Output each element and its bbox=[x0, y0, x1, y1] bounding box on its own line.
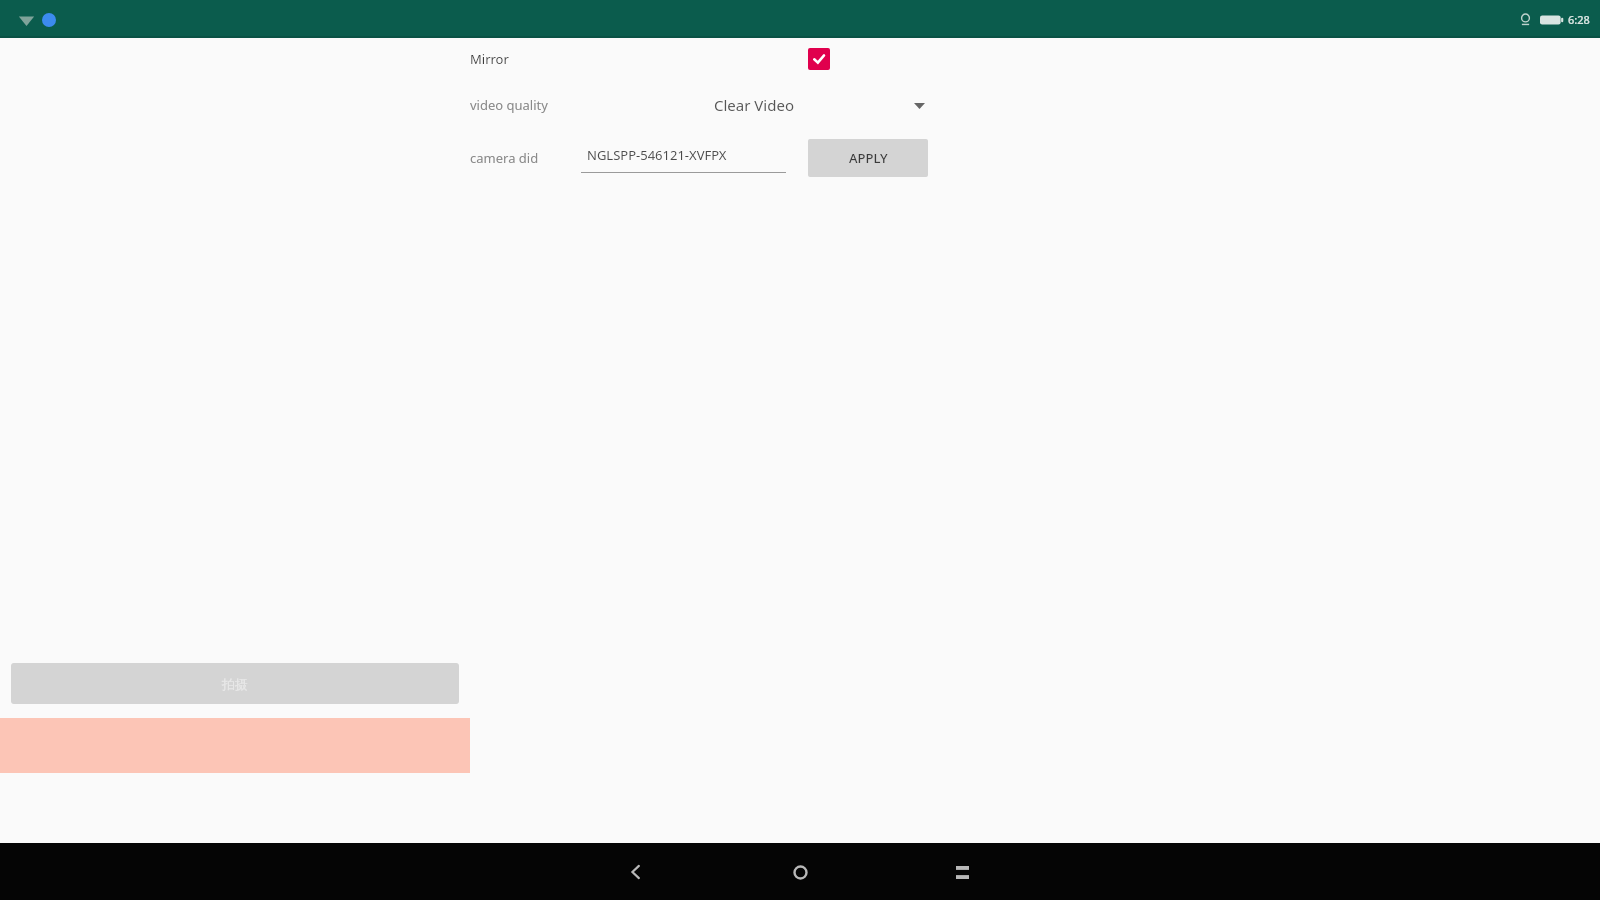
button[interactable]: Recent apps bbox=[934, 844, 990, 900]
staticText: Mirror bbox=[470, 50, 509, 68]
staticText: NGLSPP-546121-XVFPX bbox=[587, 146, 727, 164]
staticText: camera did bbox=[470, 149, 539, 167]
staticText: APPLY bbox=[849, 149, 888, 167]
button[interactable]: Home bbox=[772, 844, 828, 900]
staticText: Clear Video bbox=[714, 95, 794, 115]
button[interactable]: NGLSPP-546121-XVFPX bbox=[581, 143, 786, 173]
button[interactable]: Mirror checkbox, checked bbox=[808, 48, 830, 70]
staticText: 6:28 bbox=[1568, 12, 1590, 27]
button[interactable]: APPLY bbox=[808, 139, 928, 177]
button[interactable]: Mirror bbox=[470, 46, 830, 72]
staticText: 拍摄 bbox=[222, 676, 248, 692]
staticText: video quality bbox=[470, 96, 548, 114]
button[interactable]: Back bbox=[608, 844, 664, 900]
button[interactable]: video quality bbox=[470, 92, 925, 118]
